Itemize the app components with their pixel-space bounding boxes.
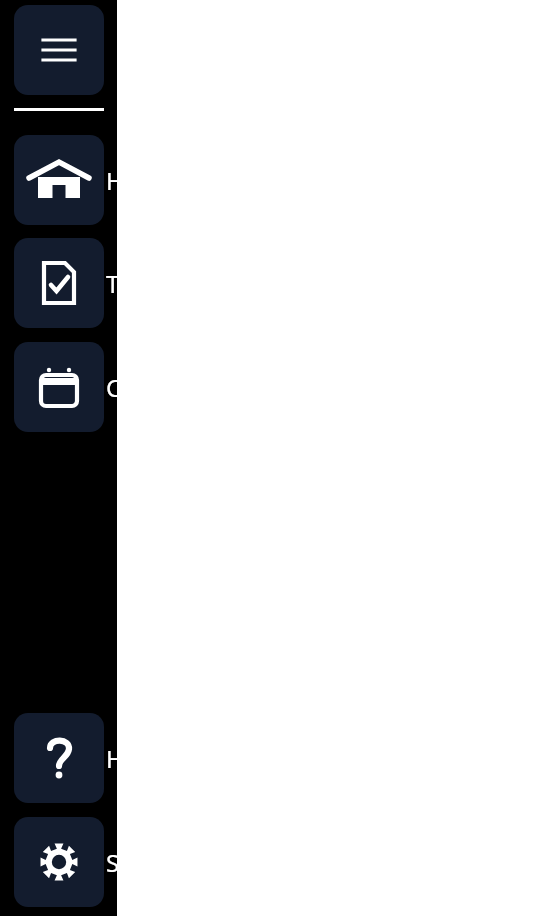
button[interactable]: Open navigation menu <box>14 5 264 95</box>
button[interactable]: Home <box>14 135 264 225</box>
staticText: Settings <box>106 846 198 879</box>
button[interactable]: Settings <box>14 817 264 907</box>
staticText: Home <box>106 164 175 197</box>
button[interactable]: Tasks <box>14 238 264 328</box>
staticText: Help <box>106 742 159 775</box>
staticText: Tasks <box>106 267 167 300</box>
staticText: Calendar <box>106 371 208 404</box>
button[interactable]: Calendar <box>14 342 264 432</box>
button[interactable]: Help <box>14 713 264 803</box>
